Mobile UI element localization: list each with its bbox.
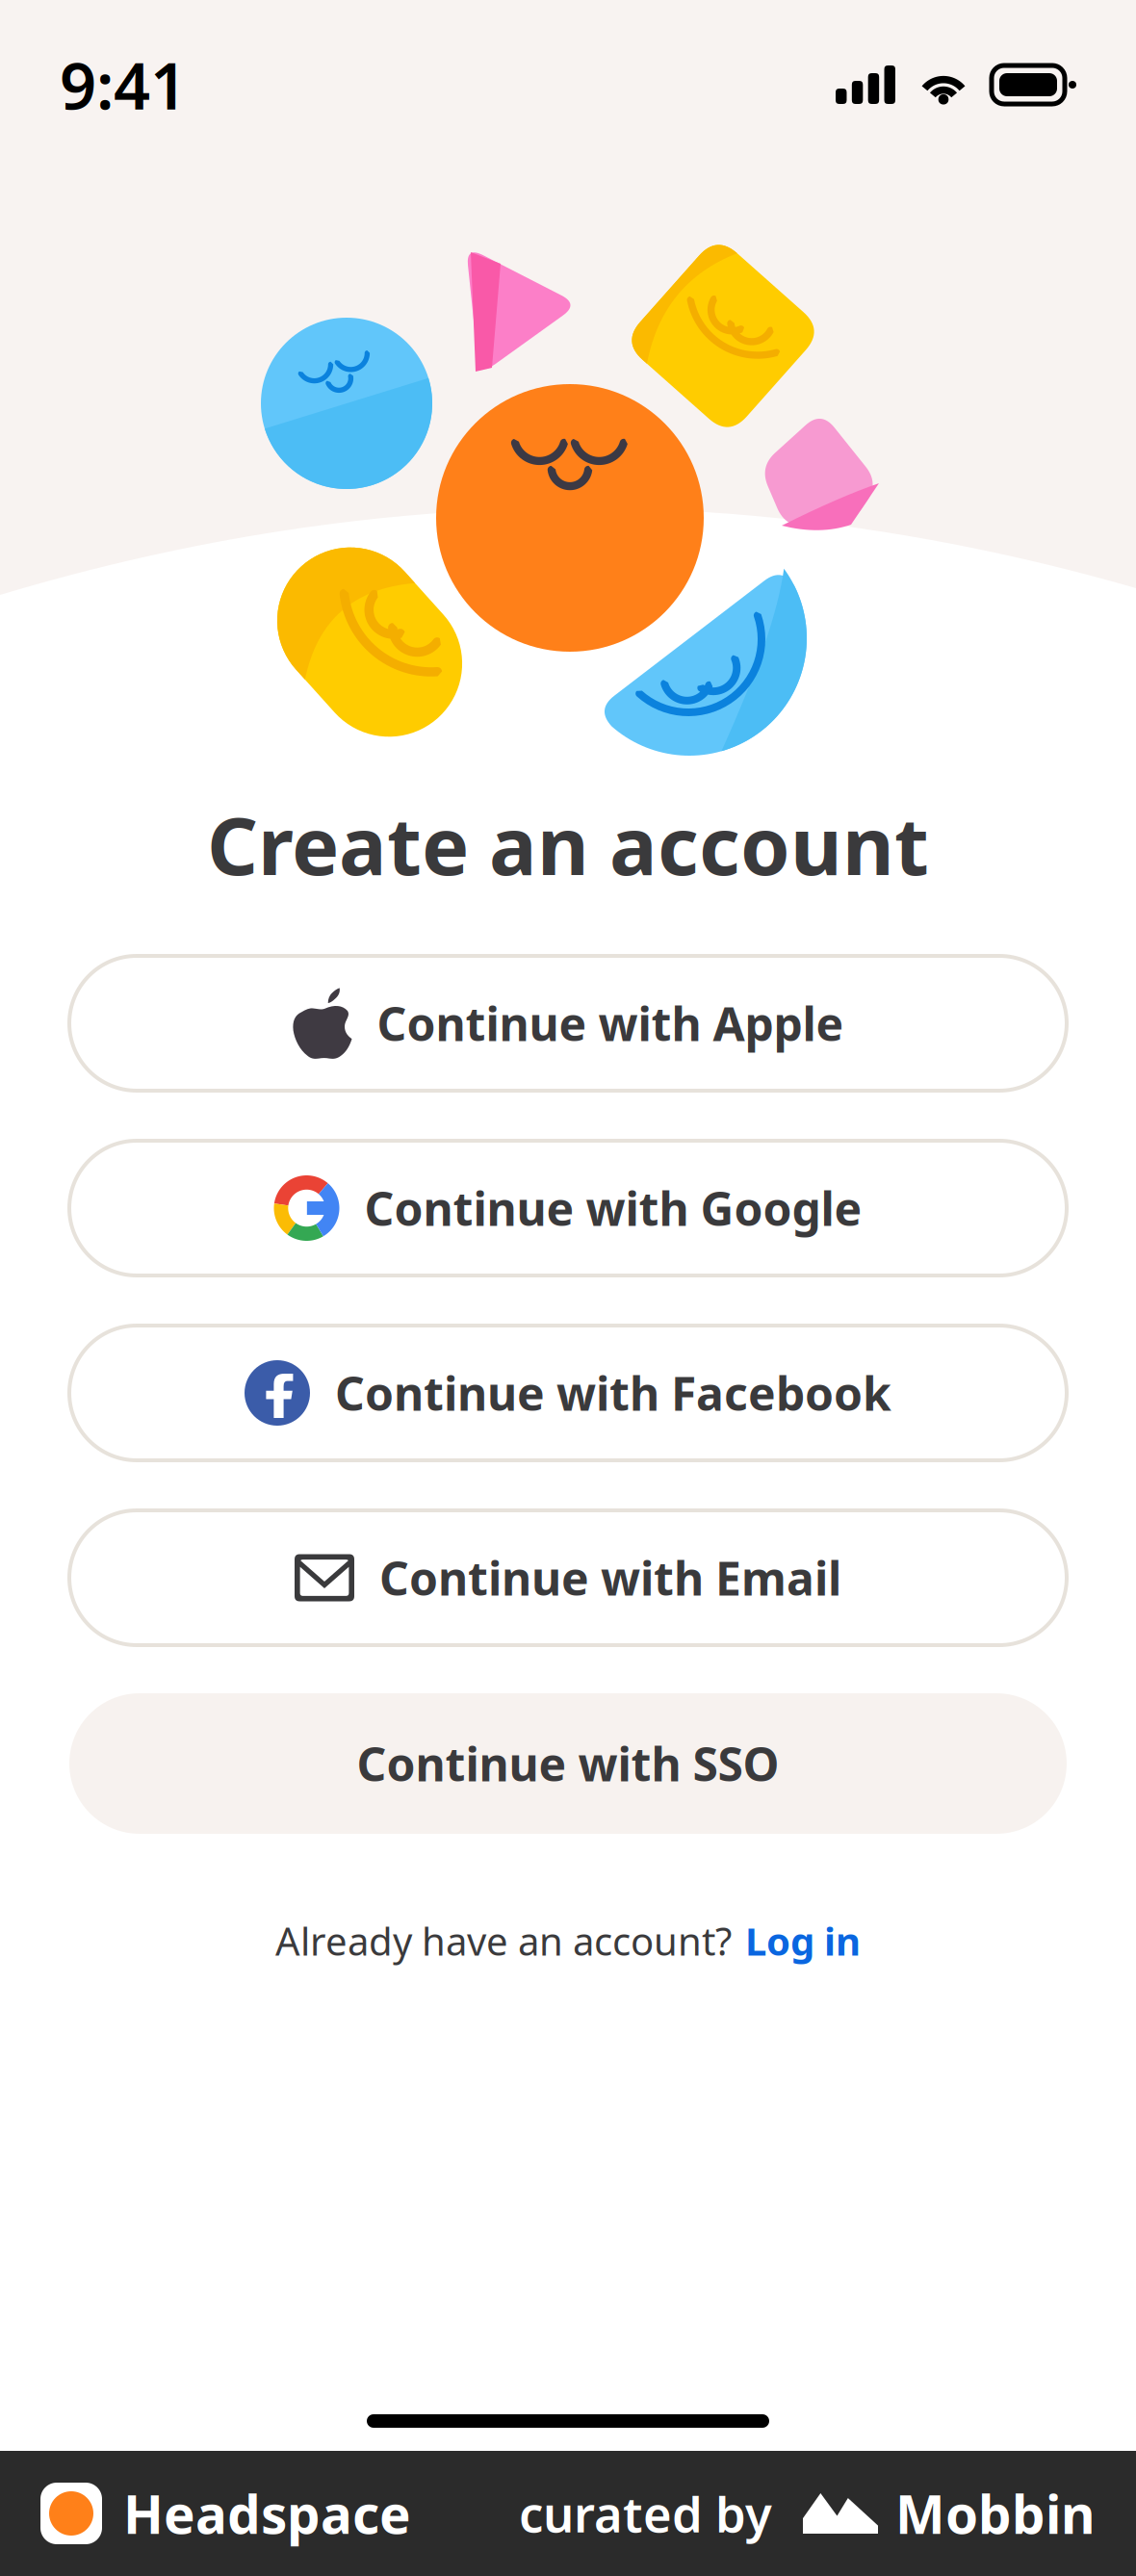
button[interactable]: Continue with Google — [69, 1141, 1067, 1275]
staticText: Headspace — [123, 2478, 411, 2548]
staticText: Create an account — [207, 791, 929, 897]
staticText: Log in — [745, 1915, 861, 1966]
button[interactable]: Continue with Facebook — [69, 1326, 1067, 1460]
staticText: Already have an account? — [275, 1915, 732, 1966]
staticText: 9:41 — [60, 42, 187, 127]
staticText: Continue with Facebook — [335, 1362, 891, 1424]
staticText: Continue with Google — [364, 1177, 862, 1239]
button[interactable]: Continue with SSO — [69, 1693, 1067, 1834]
staticText: Continue with SSO — [357, 1733, 779, 1794]
staticText: Mobbin — [895, 2478, 1096, 2548]
button[interactable]: Continue with Email — [69, 1510, 1067, 1645]
staticText: Continue with Apple — [377, 993, 844, 1054]
staticText: Continue with Email — [379, 1547, 841, 1608]
button[interactable]: Continue with Apple — [69, 956, 1067, 1091]
button[interactable]: Already have an account? — [275, 1907, 861, 1974]
staticText: curated by — [519, 2481, 772, 2546]
